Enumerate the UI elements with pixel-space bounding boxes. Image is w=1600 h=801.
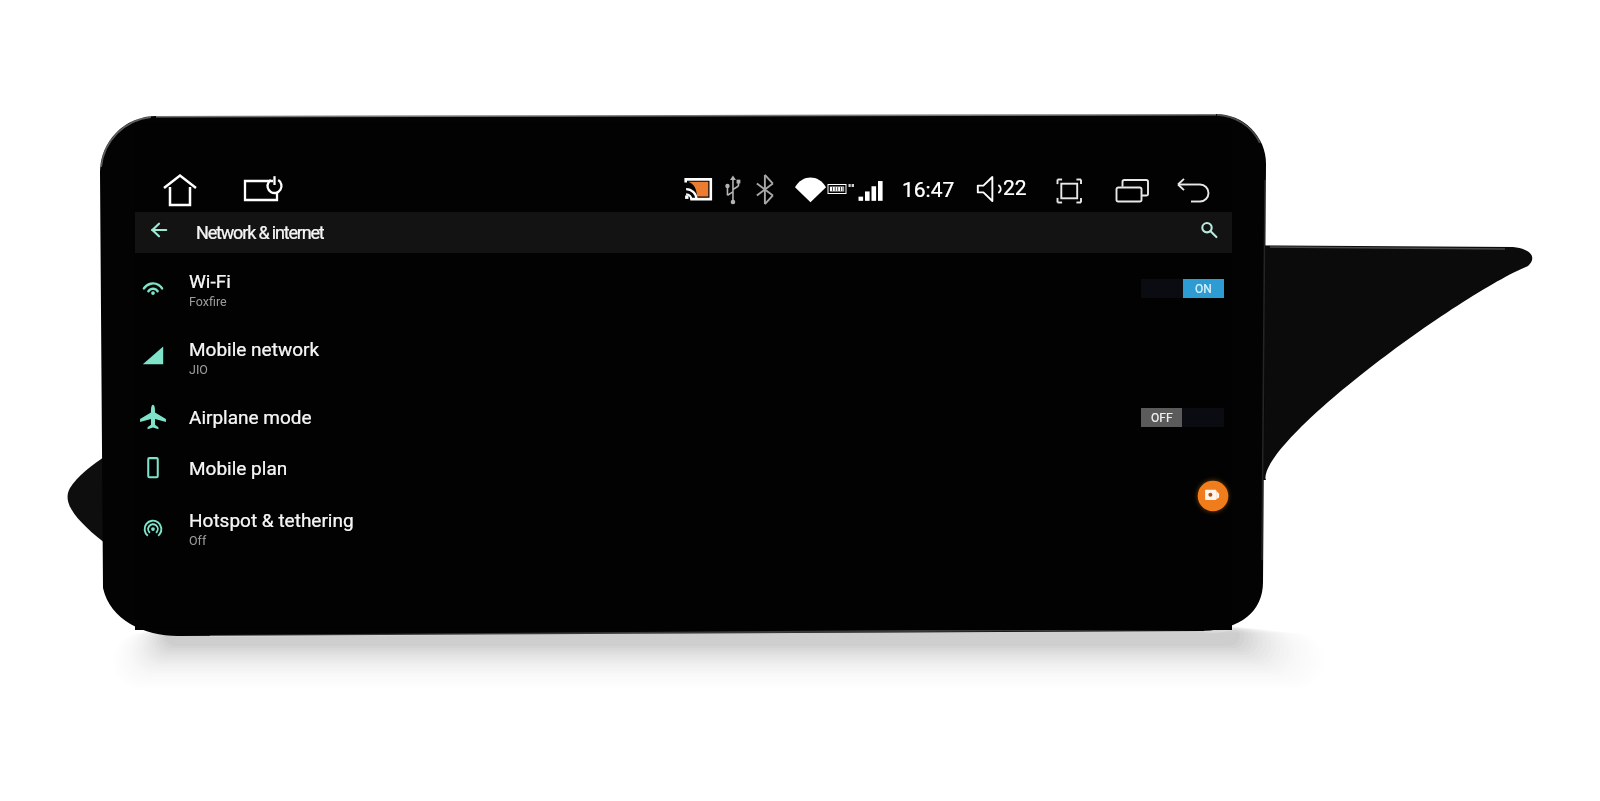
button[interactable]: USB xyxy=(721,175,744,204)
button[interactable]: Navigate up xyxy=(146,214,174,250)
staticText: OFF xyxy=(1151,411,1173,425)
staticText: Foxfire xyxy=(189,294,227,309)
staticText: 16:47 xyxy=(902,178,955,203)
button[interactable]: Mobile network xyxy=(135,327,1232,371)
staticText: Airplane mode xyxy=(189,406,312,428)
button[interactable]: Airplane mode xyxy=(135,395,1232,439)
button[interactable]: ON xyxy=(1141,279,1224,298)
button[interactable]: Record screen xyxy=(1189,472,1237,520)
button[interactable]: Cast xyxy=(684,176,714,204)
button[interactable]: Volume xyxy=(975,176,1027,202)
staticText: JIO xyxy=(189,362,208,377)
staticText: ON xyxy=(1195,282,1212,296)
staticText: Wi-Fi xyxy=(189,270,231,292)
button[interactable]: Screen off xyxy=(242,170,282,210)
button[interactable]: OFF xyxy=(1141,408,1224,427)
staticText: 22 xyxy=(1003,176,1027,201)
staticText: Network & internet xyxy=(196,222,324,243)
staticText: Off xyxy=(189,533,207,548)
button[interactable]: Back xyxy=(1176,178,1214,204)
button[interactable]: Mobile plan xyxy=(135,446,1232,490)
button[interactable]: Search xyxy=(1191,212,1223,244)
button[interactable]: Hotspot & tethering xyxy=(135,498,1232,542)
staticText: Mobile network xyxy=(189,338,320,360)
button[interactable]: Wi-Fi xyxy=(135,259,1232,303)
button[interactable]: Screenshot xyxy=(1055,177,1083,205)
staticText: Hotspot & tethering xyxy=(189,509,354,531)
button[interactable]: Home xyxy=(160,170,200,210)
button[interactable]: Bluetooth xyxy=(755,174,774,205)
button[interactable]: Recent apps xyxy=(1114,177,1150,205)
staticText: Mobile plan xyxy=(189,457,288,479)
